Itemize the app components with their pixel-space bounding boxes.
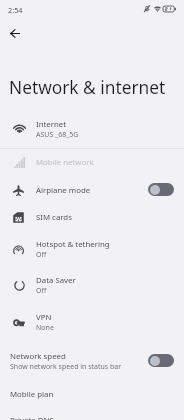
staticText: None — [36, 323, 54, 333]
button[interactable]: VPN — [0, 304, 184, 341]
button[interactable]: Internet — [0, 111, 184, 148]
staticText: Network & internet — [9, 76, 166, 100]
staticText: Mobile network — [36, 157, 94, 168]
button[interactable]: Airplane mode — [0, 176, 184, 204]
staticText: 2:54 — [8, 5, 23, 15]
staticText: Off — [36, 286, 47, 296]
staticText: VPN — [36, 312, 52, 323]
button[interactable]: Private DNS — [0, 407, 184, 420]
staticText: Hotspot & tethering — [36, 239, 110, 250]
staticText: Off — [36, 250, 47, 260]
button[interactable]: Toggle — [148, 183, 174, 196]
staticText: Internet — [36, 119, 67, 130]
button[interactable]: SIM cards — [0, 204, 184, 231]
staticText: SIM cards — [36, 212, 72, 223]
button[interactable]: Mobile plan — [0, 381, 184, 407]
staticText: Private DNS — [10, 415, 54, 420]
button[interactable]: Back — [2, 21, 27, 46]
button[interactable]: Mobile network — [0, 149, 184, 176]
staticText: Show network speed in status bar — [10, 362, 122, 372]
button[interactable]: Hotspot & tethering — [0, 231, 184, 267]
staticText: Data Saver — [36, 275, 76, 286]
button[interactable]: Data Saver — [0, 267, 184, 304]
staticText: Airplane mode — [36, 185, 91, 196]
button[interactable]: Network speed — [0, 341, 184, 381]
staticText: ASUS _68_5G — [36, 130, 79, 140]
button[interactable]: Toggle — [148, 354, 174, 367]
staticText: Mobile plan — [10, 389, 54, 400]
staticText: Network speed — [10, 351, 66, 362]
